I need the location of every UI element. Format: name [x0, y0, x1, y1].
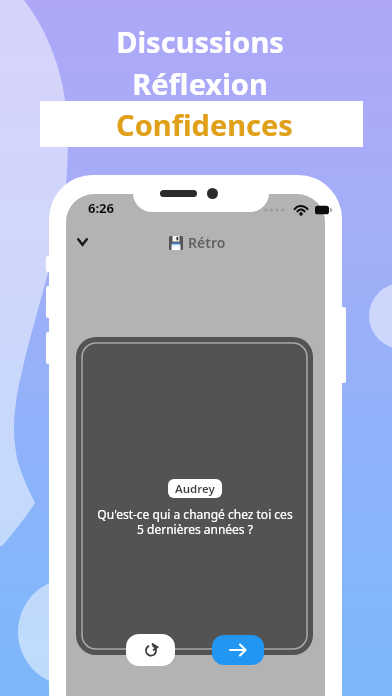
- button[interactable]: Next: [212, 635, 264, 665]
- button[interactable]: Collapse: [69, 229, 95, 255]
- staticText: Confidences: [116, 105, 293, 144]
- staticText: Réflexion: [4, 64, 392, 103]
- staticText: Audrey: [175, 481, 215, 497]
- staticText: Discussions: [4, 22, 392, 61]
- staticText: 6:26: [88, 199, 114, 217]
- staticText: Qu'est-ce qui a changé chez toi ces 5 de…: [95, 506, 295, 537]
- staticText: Rétro: [188, 233, 226, 252]
- button[interactable]: Refresh: [126, 634, 175, 666]
